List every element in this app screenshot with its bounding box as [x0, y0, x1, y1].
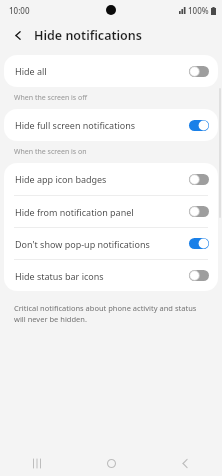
button[interactable]: Back [148, 450, 222, 476]
button[interactable]: Hide status bar icons [4, 260, 218, 291]
button[interactable]: Back [8, 25, 28, 45]
staticText: Hide full screen notifications [15, 119, 189, 131]
button[interactable]: Home [74, 450, 148, 476]
button[interactable]: Hide full screen notifications [4, 109, 218, 141]
button[interactable]: Don't show pop-up notifications [4, 228, 218, 259]
staticText: Hide from notification panel [15, 206, 189, 218]
staticText: 100% [188, 5, 209, 16]
button[interactable]: Hide all [4, 55, 218, 87]
staticText: 10:00 [9, 5, 30, 16]
staticText: When the screen is off [14, 93, 88, 103]
staticText: Hide all [15, 65, 189, 77]
staticText: Hide status bar icons [15, 270, 189, 282]
staticText: Don't show pop-up notifications [15, 238, 189, 250]
button[interactable]: Hide app icon badges [4, 163, 218, 195]
staticText: Critical notifications about phone activ… [14, 303, 208, 324]
button[interactable]: Recent apps [0, 450, 74, 476]
button[interactable]: Hide from notification panel [4, 196, 218, 227]
staticText: Hide notifications [34, 27, 142, 44]
staticText: Hide app icon badges [15, 173, 189, 185]
staticText: When the screen is on [14, 147, 87, 157]
